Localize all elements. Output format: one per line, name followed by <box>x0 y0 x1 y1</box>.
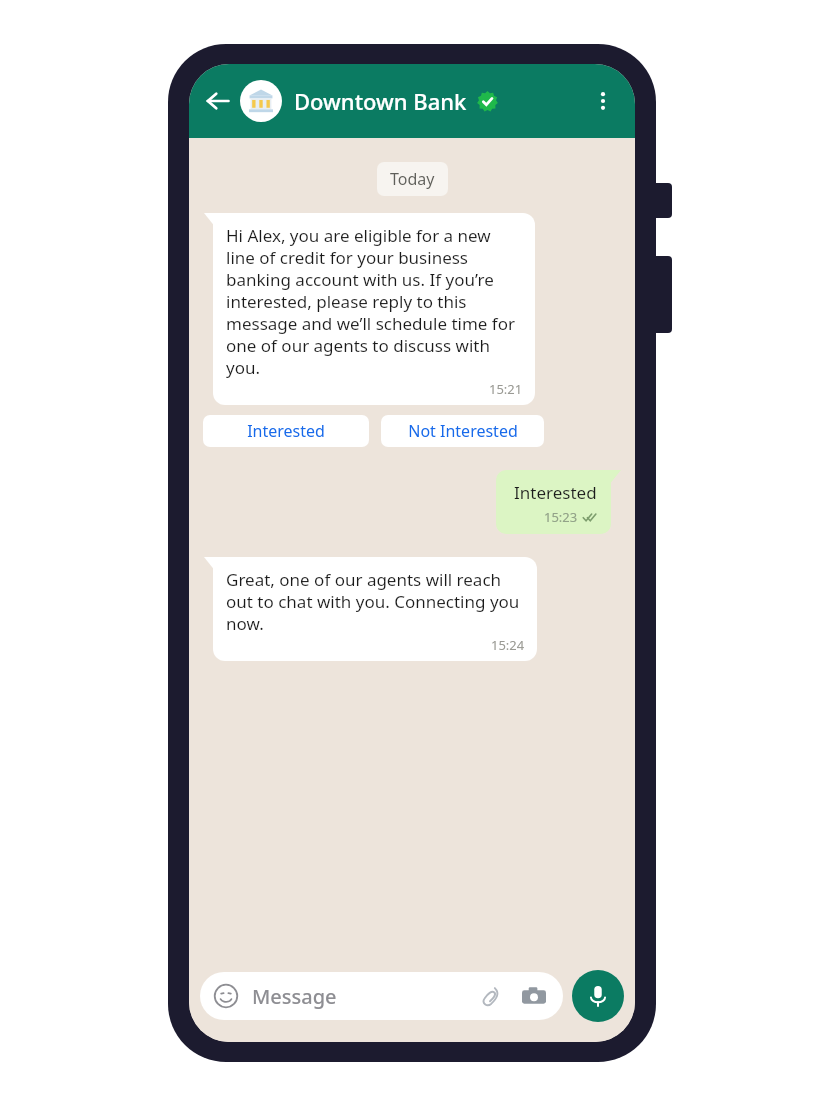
staticText: Downtown Bank <box>294 86 467 116</box>
button[interactable]: Great, one of our agents will reach out … <box>213 557 537 661</box>
button[interactable]: Not Interested <box>381 415 544 447</box>
button[interactable]: Back <box>199 82 237 120</box>
staticText: Today <box>390 168 435 190</box>
button[interactable]: Voice message <box>572 970 624 1022</box>
staticText: 15:23 <box>544 508 578 526</box>
button[interactable]: Attach <box>475 981 505 1011</box>
staticText: Interested <box>514 481 597 504</box>
staticText: Not Interested <box>408 420 518 442</box>
button[interactable]: Hi Alex, you are eligible for a new line… <box>213 213 535 405</box>
staticText: Message <box>252 983 337 1010</box>
button[interactable]: More options <box>585 83 621 119</box>
staticText: 15:21 <box>489 380 523 398</box>
button[interactable]: Interested <box>203 415 369 447</box>
staticText: Great, one of our agents will reach out … <box>226 568 525 635</box>
button[interactable]: Emoji <box>200 972 563 1020</box>
button[interactable]: Emoji <box>212 982 240 1010</box>
button[interactable]: Profile photo <box>240 80 282 122</box>
staticText: Hi Alex, you are eligible for a new line… <box>226 224 523 379</box>
staticText: 15:24 <box>491 636 525 654</box>
button[interactable]: Camera <box>519 981 549 1011</box>
button[interactable]: Interested <box>496 470 611 534</box>
staticText: Interested <box>247 420 325 442</box>
